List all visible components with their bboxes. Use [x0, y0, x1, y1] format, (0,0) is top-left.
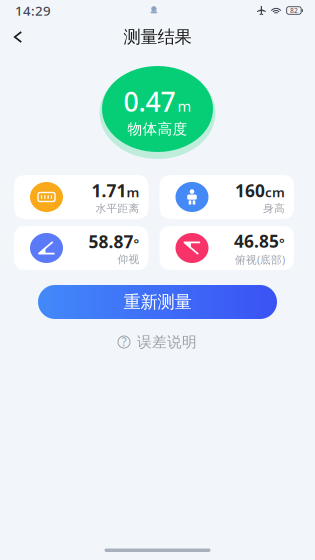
button[interactable]: 1.71	[14, 175, 148, 219]
staticText: 160	[235, 179, 265, 202]
staticText: °	[133, 234, 139, 252]
button[interactable]: 46.85	[159, 226, 294, 270]
staticText: 误差说明	[137, 333, 197, 351]
button[interactable]: 重新测量	[38, 285, 277, 319]
staticText: m	[177, 96, 191, 116]
staticText: cm	[265, 183, 285, 201]
staticText: 1.71	[91, 179, 126, 202]
staticText: 58.87	[88, 230, 133, 253]
staticText: 14:29	[15, 2, 51, 19]
staticText: m	[126, 183, 139, 201]
staticText: 测量结果	[123, 26, 191, 48]
staticText: 水平距离	[95, 202, 139, 215]
button[interactable]: ?	[110, 328, 205, 356]
staticText: 0.47	[123, 84, 175, 119]
staticText: 俯视(底部)	[235, 252, 285, 267]
staticText: 仰视	[117, 253, 139, 266]
staticText: 46.85	[234, 229, 279, 252]
button[interactable]: 58.87	[14, 226, 148, 270]
staticText: 82	[290, 6, 298, 15]
staticText: 物体高度	[127, 120, 187, 138]
staticText: 身高	[263, 202, 285, 215]
button[interactable]: Back	[3, 21, 33, 53]
button[interactable]: 160	[159, 175, 294, 219]
staticText: 重新测量	[123, 291, 191, 313]
staticText: ?	[121, 334, 126, 350]
staticText: °	[279, 234, 285, 251]
